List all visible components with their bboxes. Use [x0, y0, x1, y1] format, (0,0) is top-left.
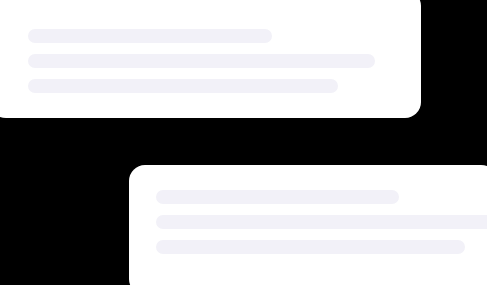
button[interactable]: Loading content card: [0, 0, 421, 118]
button[interactable]: Loading content card: [129, 165, 487, 285]
